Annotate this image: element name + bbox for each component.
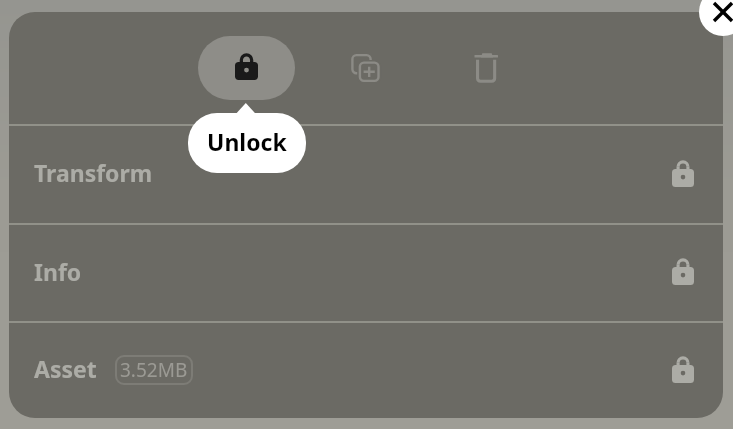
button[interactable]: Close xyxy=(699,0,733,36)
staticText: 3.52MB xyxy=(120,357,188,383)
staticText: Unlock xyxy=(207,126,287,157)
button[interactable]: Transform xyxy=(9,124,723,223)
staticText: Asset xyxy=(34,353,97,384)
staticText: Info xyxy=(34,256,82,287)
button[interactable]: Duplicate xyxy=(318,36,415,100)
button[interactable]: Asset xyxy=(9,321,723,418)
staticText: Transform xyxy=(34,157,153,188)
button[interactable]: Delete xyxy=(438,36,535,100)
button[interactable]: Unlock xyxy=(198,36,295,100)
button[interactable]: Info xyxy=(9,223,723,321)
